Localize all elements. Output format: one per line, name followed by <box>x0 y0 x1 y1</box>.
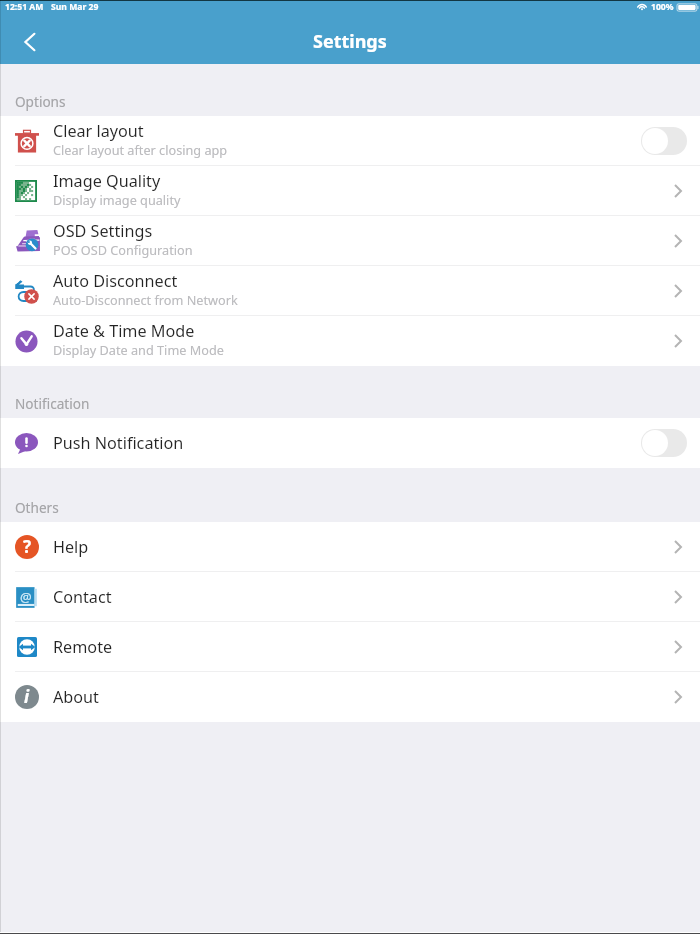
staticText: Clear layout after closing app <box>53 141 228 158</box>
button[interactable]: Toggle switch, off <box>641 127 687 155</box>
button[interactable]: Remote <box>0 622 700 672</box>
button[interactable]: Push Notification <box>0 418 700 468</box>
button[interactable]: OSD Settings <box>0 216 700 266</box>
staticText: Help <box>53 536 89 558</box>
button[interactable]: Auto Disconnect <box>0 266 700 316</box>
button[interactable]: ? <box>0 522 700 572</box>
staticText: Display image quality <box>53 191 181 208</box>
staticText: About <box>53 686 99 708</box>
staticText: Others <box>15 498 59 517</box>
staticText: Date & Time Mode <box>53 320 195 342</box>
staticText: Options <box>15 92 66 111</box>
button[interactable]: i <box>0 672 700 722</box>
staticText: Auto Disconnect <box>53 270 178 292</box>
staticText: Image Quality <box>53 170 161 192</box>
staticText: Sun Mar 29 <box>51 1 99 13</box>
button[interactable]: Clear layout <box>0 116 700 166</box>
staticText: @ <box>20 588 32 606</box>
staticText: OSD Settings <box>53 220 153 242</box>
staticText: Clear layout <box>53 120 144 142</box>
staticText: 12:51 AM <box>5 1 44 13</box>
button[interactable]: Image Quality <box>0 166 700 216</box>
button[interactable]: Toggle switch, off <box>641 429 687 457</box>
button[interactable]: Back <box>9 20 49 64</box>
staticText: Auto-Disconnect from Network <box>53 291 238 308</box>
staticText: 100% <box>651 1 674 13</box>
staticText: Notification <box>15 394 90 413</box>
staticText: Push Notification <box>53 432 184 454</box>
staticText: Settings <box>313 29 387 54</box>
button[interactable]: @ <box>0 572 700 622</box>
staticText: ? <box>23 535 32 558</box>
staticText: Display Date and Time Mode <box>53 341 224 358</box>
button[interactable]: Date & Time Mode <box>0 316 700 366</box>
staticText: Contact <box>53 586 112 608</box>
staticText: i <box>24 685 30 708</box>
staticText: POS OSD Configuration <box>53 241 193 258</box>
staticText: Remote <box>53 636 113 658</box>
